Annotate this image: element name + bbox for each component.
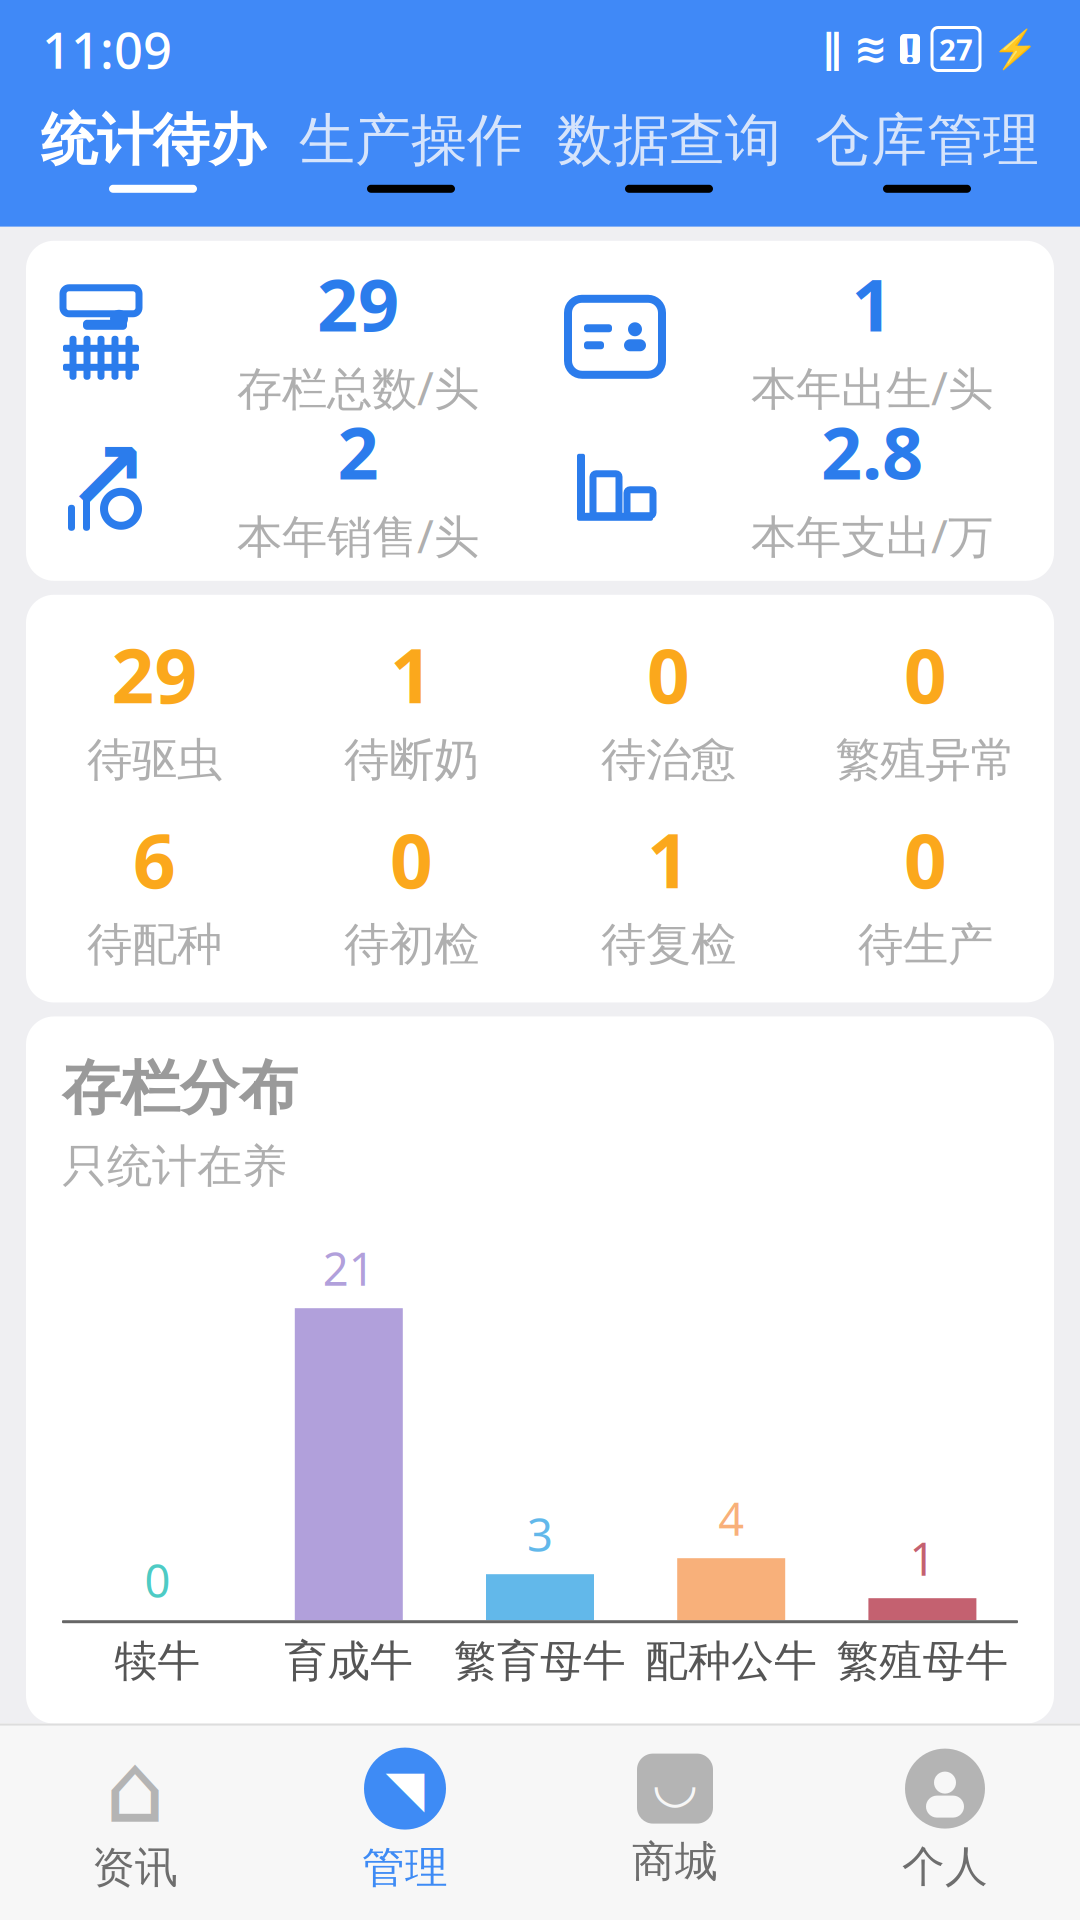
staticText: 1 (390, 625, 433, 724)
staticText: 0 (145, 1550, 171, 1610)
button[interactable]: 生产操作 (282, 106, 540, 193)
staticText: 数据查询 (557, 106, 781, 175)
staticText: 繁殖异常 (835, 732, 1015, 788)
staticText: ! (905, 26, 915, 72)
staticText: 配种公牛 (645, 1635, 817, 1688)
staticText: 商城 (632, 1836, 718, 1888)
staticText: 存栏总数/头 (237, 357, 479, 418)
staticText: 1 (647, 810, 690, 909)
staticText: 1 (909, 1528, 935, 1588)
staticText: 1 (851, 256, 892, 351)
staticText: 生产操作 (299, 106, 523, 175)
staticText: 待初检 (344, 917, 479, 972)
button[interactable]: 0 (797, 625, 1054, 788)
staticText: 育成牛 (284, 1635, 413, 1688)
staticText: 0 (390, 810, 433, 909)
staticText: 只统计在养 (62, 1138, 287, 1194)
staticText: 29 (317, 256, 399, 351)
button[interactable]: 0 (540, 625, 797, 788)
staticText: 管理 (362, 1842, 448, 1894)
button[interactable]: 0 (283, 810, 540, 972)
button[interactable]: 仓库管理 (798, 106, 1056, 193)
staticText: 仓库管理 (815, 106, 1039, 175)
staticText: 待驱虫 (87, 732, 222, 788)
staticText: ∥ (822, 26, 842, 72)
staticText: ↗ (65, 421, 148, 533)
staticText: 4 (718, 1488, 744, 1548)
staticText: 存栏分布 (62, 1052, 298, 1125)
button[interactable]: ◡ (540, 1754, 810, 1888)
staticText: 待治愈 (601, 732, 736, 788)
staticText: 0 (904, 810, 947, 909)
staticText: ◥ (385, 1760, 424, 1817)
staticText: 本年支出/万 (751, 505, 993, 566)
staticText: ◡ (654, 1752, 695, 1813)
staticText: 11:09 (42, 15, 172, 83)
staticText: ⚡ (992, 28, 1038, 70)
staticText: 资讯 (92, 1842, 178, 1894)
button[interactable]: ◥ (270, 1748, 540, 1894)
button[interactable]: 6 (26, 810, 283, 972)
button[interactable]: 2.8 (540, 404, 1054, 566)
button[interactable]: 29 (26, 625, 283, 788)
staticText: ⌂ (104, 1734, 165, 1843)
staticText: 29 (111, 625, 197, 724)
staticText: 27 (939, 29, 973, 68)
staticText: 繁育母牛 (454, 1635, 626, 1688)
button[interactable]: 个人 (810, 1749, 1080, 1893)
staticText: 2.8 (821, 404, 923, 499)
staticText: 犊牛 (115, 1635, 201, 1688)
button[interactable]: ⌂ (0, 1748, 270, 1894)
button[interactable]: 0 (797, 810, 1054, 972)
staticText: 待生产 (858, 917, 993, 972)
staticText: 0 (904, 625, 947, 724)
button[interactable]: 1 (283, 625, 540, 788)
button[interactable]: 统计待办 (24, 106, 282, 193)
button[interactable]: 29 (26, 256, 540, 418)
button[interactable]: ↗ (26, 404, 540, 566)
staticText: 待配种 (87, 917, 222, 972)
staticText: 本年出生/头 (751, 357, 993, 418)
staticText: 6 (133, 810, 176, 909)
staticText: 待复检 (601, 917, 736, 972)
staticText: ≋ (854, 26, 888, 72)
staticText: 2 (337, 404, 378, 499)
button[interactable]: 数据查询 (540, 106, 798, 193)
staticText: 本年销售/头 (237, 505, 479, 566)
staticText: 待断奶 (344, 732, 479, 788)
staticText: 个人 (902, 1841, 988, 1893)
staticText: 3 (527, 1504, 553, 1564)
staticText: 繁殖母牛 (836, 1635, 1008, 1688)
staticText: 统计待办 (41, 106, 265, 175)
button[interactable]: 1 (540, 256, 1054, 418)
staticText: 21 (323, 1238, 375, 1298)
staticText: 0 (647, 625, 690, 724)
button[interactable]: 1 (540, 810, 797, 972)
